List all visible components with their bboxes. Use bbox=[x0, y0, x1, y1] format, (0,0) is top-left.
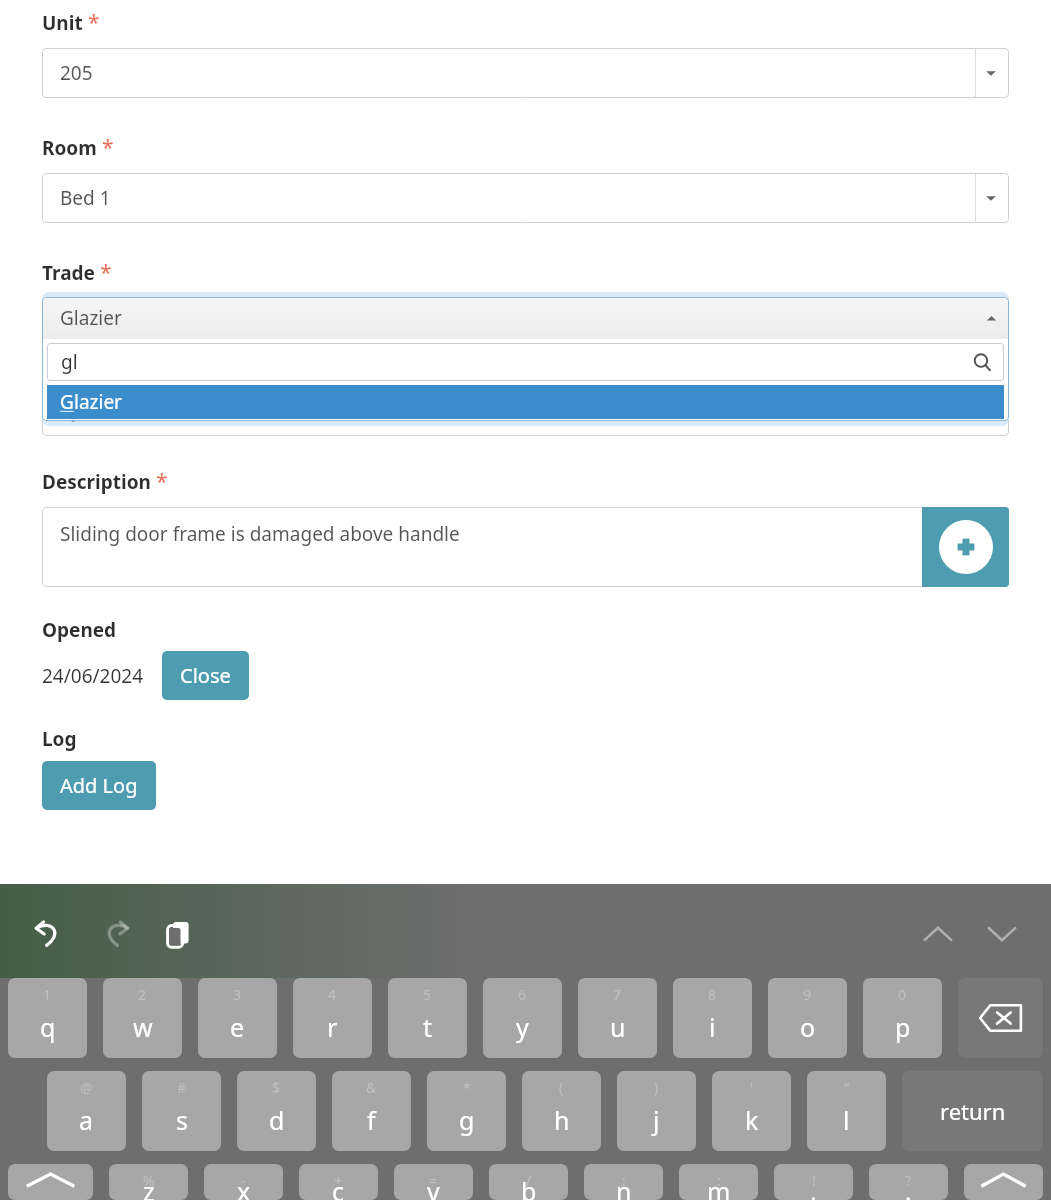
button[interactable]: ' bbox=[712, 1071, 791, 1151]
staticText: w bbox=[133, 1010, 153, 1044]
staticText: * bbox=[88, 8, 100, 37]
button[interactable]: Glazier bbox=[42, 297, 1009, 339]
staticText: o bbox=[800, 1010, 816, 1044]
staticText: ' bbox=[750, 1078, 754, 1097]
button[interactable]: Shift bbox=[964, 1164, 1043, 1200]
staticText: g bbox=[459, 1103, 475, 1137]
button[interactable]: ? bbox=[869, 1164, 948, 1200]
button[interactable]: Add photo bbox=[922, 507, 1009, 587]
button[interactable]: - bbox=[204, 1164, 283, 1200]
button[interactable]: 8 bbox=[673, 978, 752, 1058]
staticText: Log bbox=[42, 726, 77, 752]
button[interactable]: Shift bbox=[8, 1164, 93, 1200]
staticText: gl bbox=[61, 349, 78, 375]
staticText: ? bbox=[905, 1171, 912, 1190]
button[interactable]: $ bbox=[237, 1071, 316, 1151]
button[interactable]: 5 bbox=[388, 978, 467, 1058]
button[interactable]: 7 bbox=[578, 978, 657, 1058]
staticText: l bbox=[843, 1103, 850, 1137]
button[interactable]: Sliding door frame is damaged above hand… bbox=[42, 507, 1009, 587]
staticText: 4 bbox=[328, 985, 337, 1004]
button[interactable]: return bbox=[902, 1071, 1043, 1151]
staticText: Trade bbox=[42, 260, 95, 286]
staticText: = bbox=[429, 1171, 438, 1190]
button[interactable]: ( bbox=[522, 1071, 601, 1151]
staticText: return bbox=[940, 1096, 1006, 1126]
button[interactable]: G bbox=[47, 385, 1004, 419]
button[interactable]: Bed 1 bbox=[42, 173, 1009, 223]
staticText: 6 bbox=[518, 985, 527, 1004]
staticText: p bbox=[895, 1010, 911, 1044]
button[interactable]: 3 bbox=[198, 978, 277, 1058]
button[interactable]: % bbox=[109, 1164, 188, 1200]
staticText: h bbox=[554, 1103, 570, 1137]
staticText: Close bbox=[180, 662, 231, 689]
button[interactable]: Backspace bbox=[958, 978, 1043, 1058]
staticText: s bbox=[176, 1103, 188, 1137]
button[interactable]: Previous field bbox=[915, 911, 961, 957]
staticText: f bbox=[367, 1103, 376, 1137]
staticText: Glazier bbox=[60, 305, 122, 331]
staticText: 1 bbox=[43, 985, 52, 1004]
staticText: 0 bbox=[898, 985, 907, 1004]
staticText: / bbox=[526, 1171, 532, 1190]
staticText: 205 bbox=[60, 60, 93, 86]
button[interactable]: gl bbox=[47, 343, 1004, 381]
staticText: d bbox=[269, 1103, 285, 1137]
button[interactable]: 4 bbox=[293, 978, 372, 1058]
button[interactable]: : bbox=[679, 1164, 758, 1200]
staticText: q bbox=[40, 1010, 56, 1044]
button[interactable]: " bbox=[807, 1071, 886, 1151]
staticText: ) bbox=[654, 1078, 659, 1097]
staticText: 2 bbox=[138, 985, 147, 1004]
staticText: x bbox=[237, 1174, 251, 1200]
button[interactable]: Add Log bbox=[42, 761, 156, 810]
staticText: 8 bbox=[708, 985, 717, 1004]
staticText: 24/06/2024 bbox=[42, 663, 144, 689]
button[interactable]: Paste bbox=[156, 911, 202, 957]
staticText: e bbox=[230, 1010, 245, 1044]
staticText: n bbox=[616, 1174, 632, 1200]
button[interactable]: @ bbox=[47, 1071, 126, 1151]
staticText: ; bbox=[622, 1171, 626, 1190]
button[interactable]: ! bbox=[774, 1164, 853, 1200]
staticText: " bbox=[844, 1078, 850, 1097]
staticText: 9 bbox=[803, 985, 812, 1004]
staticText: ( bbox=[559, 1078, 564, 1097]
staticText: - bbox=[241, 1171, 246, 1190]
button[interactable]: Close bbox=[162, 651, 249, 700]
button[interactable]: / bbox=[489, 1164, 568, 1200]
button[interactable]: 9 bbox=[768, 978, 847, 1058]
button[interactable]: 0 bbox=[863, 978, 942, 1058]
staticText: v bbox=[427, 1174, 440, 1200]
staticText: 3 bbox=[233, 985, 242, 1004]
button[interactable]: & bbox=[332, 1071, 411, 1151]
staticText: Bed 1 bbox=[60, 185, 111, 211]
button[interactable]: Undo bbox=[26, 911, 72, 957]
staticText: j bbox=[653, 1103, 660, 1137]
button[interactable]: 6 bbox=[483, 978, 562, 1058]
button[interactable]: 1 bbox=[8, 978, 87, 1058]
staticText: Unit bbox=[42, 10, 83, 36]
button[interactable]: ; bbox=[584, 1164, 663, 1200]
button[interactable]: Redo bbox=[92, 911, 138, 957]
staticText: 7 bbox=[613, 985, 622, 1004]
staticText: * bbox=[100, 258, 112, 287]
staticText: c bbox=[332, 1174, 345, 1200]
button[interactable]: Next field bbox=[979, 911, 1025, 957]
button[interactable]: ) bbox=[617, 1071, 696, 1151]
staticText: k bbox=[745, 1103, 759, 1137]
staticText: & bbox=[366, 1078, 377, 1097]
button[interactable]: + bbox=[299, 1164, 378, 1200]
staticText: Sliding door frame is damaged above hand… bbox=[60, 521, 460, 547]
button[interactable]: 205 bbox=[42, 48, 1009, 98]
button[interactable]: = bbox=[394, 1164, 473, 1200]
button[interactable]: # bbox=[142, 1071, 221, 1151]
button[interactable]: 2 bbox=[103, 978, 182, 1058]
staticText: z bbox=[143, 1174, 155, 1200]
staticText: . bbox=[905, 1174, 912, 1200]
button[interactable]: * bbox=[427, 1071, 506, 1151]
staticText: t bbox=[423, 1010, 433, 1044]
staticText: 5 bbox=[423, 985, 432, 1004]
staticText: ! bbox=[812, 1171, 816, 1190]
